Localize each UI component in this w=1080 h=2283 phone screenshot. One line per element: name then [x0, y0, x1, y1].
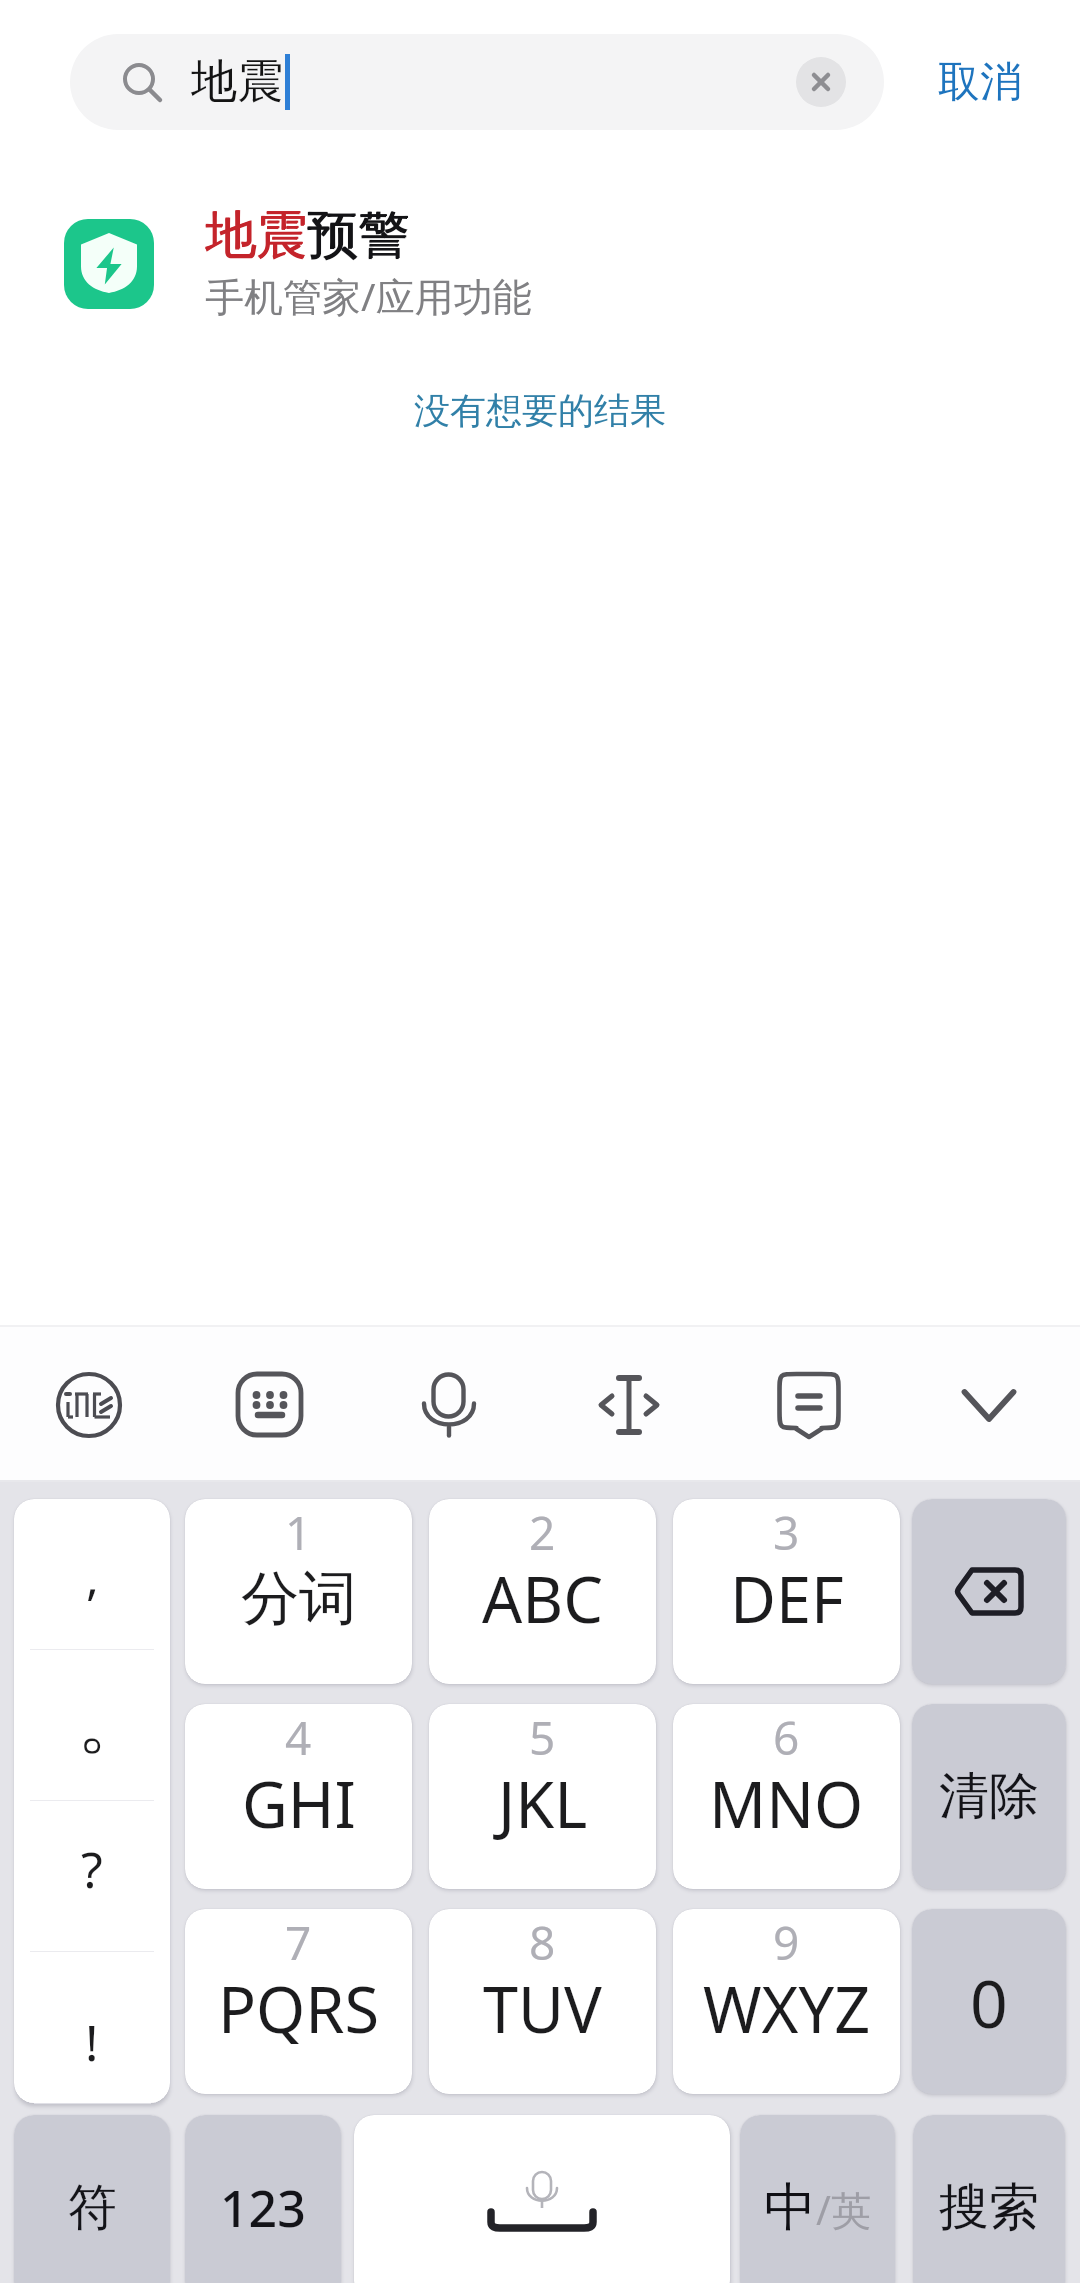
button[interactable]: 搜索	[913, 2115, 1065, 2283]
staticText: 地震	[191, 53, 283, 111]
button[interactable]: 4	[185, 1704, 412, 1889]
staticText: 123	[220, 2174, 306, 2242]
button[interactable]: 1	[185, 1499, 412, 1684]
button[interactable]: ,	[14, 1499, 170, 1650]
staticText: MNO	[709, 1761, 864, 1847]
staticText: GHI	[242, 1761, 356, 1847]
button[interactable]: 没有想要的结果	[400, 372, 680, 448]
button[interactable]: Voice input	[393, 1349, 505, 1461]
staticText: !	[85, 2008, 99, 2076]
staticText: ?	[81, 1835, 103, 1903]
button[interactable]: 地震预警	[0, 186, 1080, 344]
button[interactable]: Clear search	[796, 57, 846, 107]
button[interactable]: ?	[14, 1801, 170, 1952]
button[interactable]: 2	[429, 1499, 656, 1684]
button[interactable]: 6	[673, 1704, 900, 1889]
staticText: 手机管家/应用功能	[205, 269, 532, 322]
staticText: 地震预警	[206, 203, 410, 267]
staticText: 3	[773, 1501, 800, 1564]
staticText: 清除	[939, 1765, 1039, 1828]
staticText: PQRS	[218, 1966, 380, 2052]
button[interactable]: 8	[429, 1909, 656, 2094]
button[interactable]: Hide keyboard	[933, 1349, 1045, 1461]
button[interactable]: Move cursor	[573, 1349, 685, 1461]
staticText: ABC	[482, 1556, 604, 1642]
staticText: 7	[285, 1911, 312, 1974]
staticText: DEF	[730, 1556, 844, 1642]
button[interactable]: 符	[14, 2115, 170, 2283]
button[interactable]: 5	[429, 1704, 656, 1889]
staticText: 8	[529, 1911, 556, 1974]
button[interactable]: 中/英	[740, 2115, 895, 2283]
staticText: 1	[285, 1501, 312, 1564]
button[interactable]: 9	[673, 1909, 900, 2094]
staticText: 中/英	[764, 2175, 871, 2241]
button[interactable]: 取消	[926, 36, 1034, 128]
button[interactable]: 7	[185, 1909, 412, 2094]
staticText: 取消	[938, 56, 1022, 109]
button[interactable]: Keyboard layout	[214, 1349, 326, 1461]
staticText: 符	[68, 2177, 117, 2239]
staticText: WXYZ	[703, 1966, 871, 2052]
button[interactable]: 123	[185, 2115, 341, 2283]
button[interactable]: 0	[912, 1909, 1066, 2094]
staticText: 4	[285, 1706, 312, 1769]
button[interactable]: 清除	[912, 1704, 1066, 1889]
staticText: 地震预警	[205, 204, 409, 268]
staticText: 地震预警	[205, 203, 409, 267]
button[interactable]: Backspace	[912, 1499, 1066, 1684]
staticText: 6	[773, 1706, 800, 1769]
staticText: 没有想要的结果	[414, 388, 666, 433]
button[interactable]: 3	[673, 1499, 900, 1684]
button[interactable]: Space	[354, 2115, 730, 2283]
button[interactable]: Clipboard	[753, 1349, 865, 1461]
button[interactable]: Search	[70, 34, 884, 130]
staticText: ,	[86, 1544, 99, 1609]
staticText: JKL	[498, 1761, 588, 1847]
button[interactable]: Input method	[33, 1349, 145, 1461]
button[interactable]: 。	[14, 1650, 170, 1801]
staticText: 5	[529, 1706, 556, 1769]
staticText: 2	[529, 1501, 556, 1564]
staticText: 。	[77, 1677, 149, 1768]
staticText: 9	[773, 1911, 800, 1974]
button[interactable]: !	[14, 1952, 170, 2103]
staticText: 搜索	[939, 2176, 1039, 2239]
staticText: TUV	[483, 1966, 602, 2052]
other: Search	[124, 64, 164, 104]
staticText: 分词	[241, 1562, 357, 1635]
staticText: 0	[970, 1957, 1008, 2047]
